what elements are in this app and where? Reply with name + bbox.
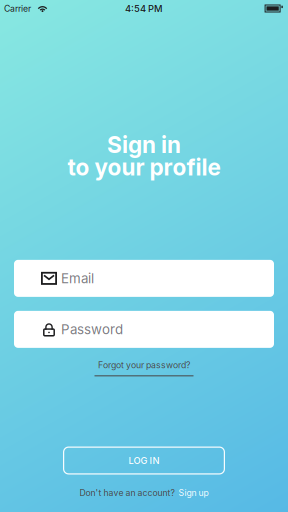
button[interactable]: Don't have an account? — [73, 485, 214, 500]
staticText: Sign up — [178, 487, 208, 498]
staticText: to your profile — [67, 153, 220, 181]
staticText: Forgot your password? — [98, 360, 190, 370]
staticText: Don't have an account? — [79, 487, 174, 498]
staticText: Email — [61, 270, 94, 286]
button[interactable]: LOG IN — [63, 446, 225, 474]
button[interactable]: Forgot your password? — [90, 360, 197, 376]
button[interactable]: Email — [14, 260, 274, 297]
staticText: Password — [61, 321, 123, 337]
staticText: 4:54 PM — [125, 3, 163, 14]
staticText: LOG IN — [128, 455, 159, 466]
button[interactable]: Password — [14, 311, 274, 348]
staticText: Carrier — [4, 3, 31, 14]
staticText: Sign in — [107, 131, 181, 158]
